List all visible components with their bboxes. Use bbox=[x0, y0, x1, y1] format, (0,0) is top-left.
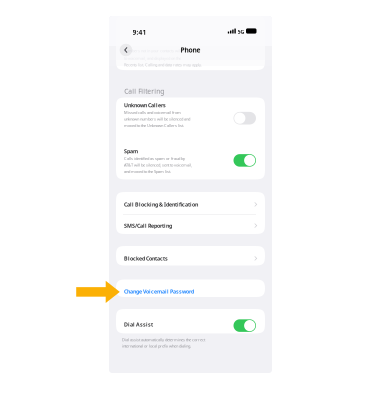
staticText: Blocked Contacts bbox=[124, 255, 168, 262]
staticText: moved to the Unknown Callers list. bbox=[124, 123, 184, 128]
staticText: Dial assist automatically determines the… bbox=[122, 337, 205, 342]
staticText: and moved to the Spam list. bbox=[124, 169, 171, 174]
staticText: Recents list. Calling and data rates may… bbox=[124, 62, 202, 67]
button[interactable]: SMS/Call Reporting bbox=[116, 214, 265, 234]
staticText: Missed calls and voicemail from bbox=[124, 110, 181, 115]
button[interactable]: Change Voicemail Password bbox=[116, 279, 265, 297]
staticText: 5G bbox=[237, 28, 244, 35]
staticText: Calls identified as spam or fraud by bbox=[124, 156, 185, 161]
staticText: 9:41 bbox=[133, 28, 147, 37]
staticText: Call Filtering bbox=[124, 87, 164, 96]
button[interactable]: Blocked Contacts bbox=[116, 246, 265, 265]
staticText: Change Voicemail Password bbox=[124, 288, 194, 295]
button[interactable]: Dial Assist bbox=[116, 309, 265, 333]
staticText: AT&T will be silenced, sent to voicemail… bbox=[124, 162, 192, 168]
button[interactable]: Call Blocking & Identification bbox=[116, 192, 265, 214]
button[interactable]: Spam bbox=[116, 143, 265, 179]
staticText: to voicemail, and displayed on the bbox=[124, 56, 181, 61]
button[interactable]: Unknown Callers bbox=[116, 97, 265, 139]
button[interactable]: Back bbox=[118, 42, 133, 57]
staticText: Dial Assist bbox=[124, 321, 153, 328]
staticText: numbers not in your contacts will be sen… bbox=[124, 48, 194, 53]
staticText: Spam bbox=[124, 148, 138, 155]
staticText: Phone bbox=[180, 46, 200, 54]
staticText: unknown numbers will be silenced and bbox=[124, 116, 190, 122]
staticText: international or local prefix when diali… bbox=[122, 343, 191, 349]
staticText: Unknown Callers bbox=[124, 102, 166, 109]
staticText: SMS/Call Reporting bbox=[124, 222, 172, 229]
staticText: Call Blocking & Identification bbox=[124, 201, 198, 208]
